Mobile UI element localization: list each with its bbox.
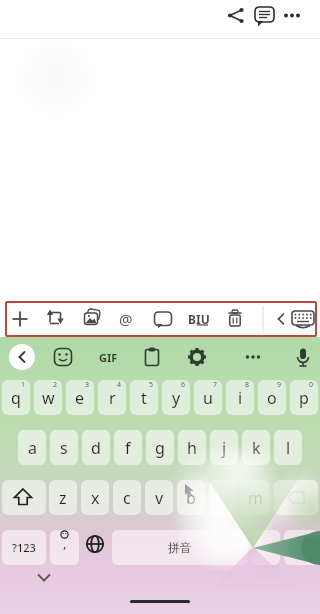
button[interactable]: z [49, 480, 77, 515]
button[interactable]: s [50, 430, 78, 465]
staticText: g [155, 437, 165, 459]
staticText: q [11, 387, 21, 409]
staticText: 8 [245, 380, 250, 390]
staticText: j [222, 437, 227, 459]
button[interactable]: 拼音 [112, 530, 248, 565]
button[interactable] [270, 306, 296, 332]
button[interactable] [291, 344, 317, 370]
staticText: 7 [213, 380, 218, 390]
staticText: i [238, 387, 243, 409]
staticText: 4 [117, 380, 122, 390]
button[interactable]: k [242, 430, 270, 465]
button[interactable]: y [162, 380, 190, 415]
button[interactable]: h [178, 430, 206, 465]
staticText: ?123 [12, 540, 36, 555]
staticText: , [63, 534, 67, 552]
button[interactable] [115, 306, 141, 332]
button[interactable] [2, 480, 46, 515]
button[interactable] [50, 530, 79, 565]
staticText: 6 [181, 380, 186, 390]
staticText: l [286, 437, 291, 459]
button[interactable]: v [145, 480, 173, 515]
staticText: 2 [53, 380, 58, 390]
button[interactable]: t [130, 380, 158, 415]
staticText: 拼音 [168, 540, 192, 555]
button[interactable] [274, 480, 318, 515]
button[interactable] [252, 5, 276, 27]
button[interactable] [281, 5, 305, 27]
button[interactable]: c [113, 480, 141, 515]
button[interactable] [241, 344, 267, 370]
button[interactable] [151, 306, 177, 332]
button[interactable]: b [177, 480, 205, 515]
button[interactable]: o [258, 380, 286, 415]
staticText: m [248, 487, 263, 509]
button[interactable] [28, 565, 60, 591]
button[interactable] [224, 306, 250, 332]
staticText: a [28, 437, 37, 459]
staticText: z [59, 487, 67, 509]
button[interactable]: l [274, 430, 302, 465]
button[interactable]: g [146, 430, 174, 465]
button[interactable] [186, 306, 212, 332]
staticText: t [141, 387, 147, 409]
staticText: 5 [149, 380, 154, 390]
staticText: c [123, 487, 131, 509]
button[interactable] [44, 306, 70, 332]
button[interactable]: f [114, 430, 142, 465]
staticText: p [299, 387, 309, 409]
button[interactable] [9, 344, 35, 370]
staticText: 3 [85, 380, 90, 390]
staticText: o [267, 387, 277, 409]
button[interactable]: u [194, 380, 222, 415]
button[interactable]: j [210, 430, 238, 465]
button[interactable]: GIF [96, 347, 120, 367]
button[interactable] [9, 306, 35, 332]
staticText: 1 [21, 380, 26, 390]
staticText: @ [119, 309, 133, 329]
button[interactable]: w [34, 380, 62, 415]
staticText: BIU [188, 311, 210, 327]
staticText: h [187, 437, 197, 459]
button[interactable]: r [98, 380, 126, 415]
button[interactable] [51, 344, 77, 370]
staticText: k [252, 437, 261, 459]
button[interactable] [185, 344, 211, 370]
button[interactable]: a [18, 430, 46, 465]
button[interactable] [140, 344, 166, 370]
button[interactable]: m [241, 480, 269, 515]
staticText: u [203, 387, 213, 409]
button[interactable]: e [66, 380, 94, 415]
button[interactable] [290, 306, 316, 332]
button[interactable]: ?123 [2, 530, 46, 565]
staticText: n [218, 487, 228, 509]
staticText: w [42, 387, 55, 409]
staticText: 9 [277, 380, 282, 390]
button[interactable] [225, 5, 247, 27]
staticText: x [91, 487, 100, 509]
button[interactable]: q [2, 380, 30, 415]
button[interactable]: p [290, 380, 318, 415]
button[interactable]: d [82, 430, 110, 465]
staticText: e [75, 387, 85, 409]
button[interactable]: i [226, 380, 254, 415]
staticText: s [60, 437, 68, 459]
staticText: f [125, 437, 131, 459]
staticText: v [155, 487, 164, 509]
button[interactable] [252, 530, 280, 565]
staticText: GIF [99, 350, 118, 365]
button[interactable]: n [209, 480, 237, 515]
staticText: d [91, 437, 101, 459]
button[interactable] [284, 530, 318, 565]
button[interactable]: x [81, 480, 109, 515]
staticText: y [172, 387, 181, 409]
staticText: r [109, 387, 116, 409]
button[interactable] [80, 306, 106, 332]
staticText: 0 [309, 380, 314, 390]
staticText: b [186, 487, 196, 509]
